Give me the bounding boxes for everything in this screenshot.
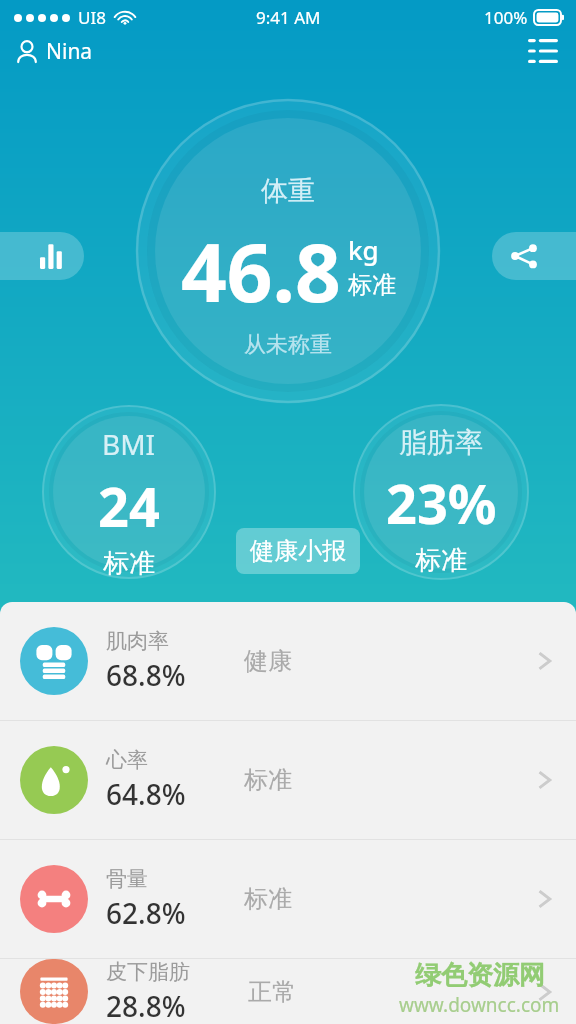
- staticText: 正常: [248, 977, 296, 1007]
- staticText: 9:41 AM: [256, 6, 321, 29]
- staticText: 体重: [261, 174, 315, 208]
- staticText: 100%: [484, 6, 528, 29]
- staticText: 24: [98, 469, 160, 543]
- staticText: 骨量: [106, 866, 148, 892]
- staticText: 62.8%: [106, 894, 186, 932]
- staticText: 68.8%: [106, 656, 186, 694]
- button[interactable]: 骨量: [0, 840, 576, 958]
- other: Open: [534, 888, 556, 910]
- other: Open: [534, 650, 556, 672]
- staticText: 健康: [244, 646, 292, 676]
- staticText: 标准: [415, 544, 467, 577]
- other: Open: [534, 769, 556, 791]
- button[interactable]: BMI: [49, 425, 209, 580]
- staticText: 皮下脂肪: [106, 959, 190, 985]
- staticText: 23%: [386, 466, 497, 540]
- staticText: 28.8%: [106, 987, 186, 1024]
- button[interactable]: Statistics: [0, 232, 84, 280]
- staticText: 标准: [348, 270, 396, 300]
- staticText: 46.8: [181, 216, 341, 325]
- staticText: 64.8%: [106, 775, 186, 813]
- button[interactable]: Share: [492, 232, 576, 280]
- staticText: 标准: [244, 884, 292, 914]
- staticText: 从未称重: [244, 331, 332, 359]
- staticText: UI8: [78, 6, 106, 29]
- button[interactable]: 健康小报: [236, 528, 360, 574]
- staticText: 脂肪率: [399, 425, 483, 460]
- staticText: 标准: [244, 765, 292, 795]
- button[interactable]: 皮下脂肪: [0, 959, 576, 1024]
- button[interactable]: 心率: [0, 721, 576, 839]
- other: Open: [534, 981, 556, 1003]
- button[interactable]: 肌肉率: [0, 602, 576, 720]
- button[interactable]: 脂肪率: [361, 425, 521, 577]
- staticText: 标准: [103, 547, 155, 580]
- staticText: 绿色资源网: [415, 959, 545, 992]
- staticText: 心率: [106, 747, 148, 773]
- staticText: kg: [348, 232, 379, 267]
- staticText: BMI: [102, 425, 156, 463]
- button[interactable]: Menu: [526, 34, 560, 68]
- staticText: 肌肉率: [106, 628, 169, 654]
- staticText: 健康小报: [250, 536, 346, 566]
- button[interactable]: Nina: [14, 35, 95, 68]
- staticText: www.downcc.com: [399, 992, 560, 1018]
- staticText: Nina: [46, 37, 93, 66]
